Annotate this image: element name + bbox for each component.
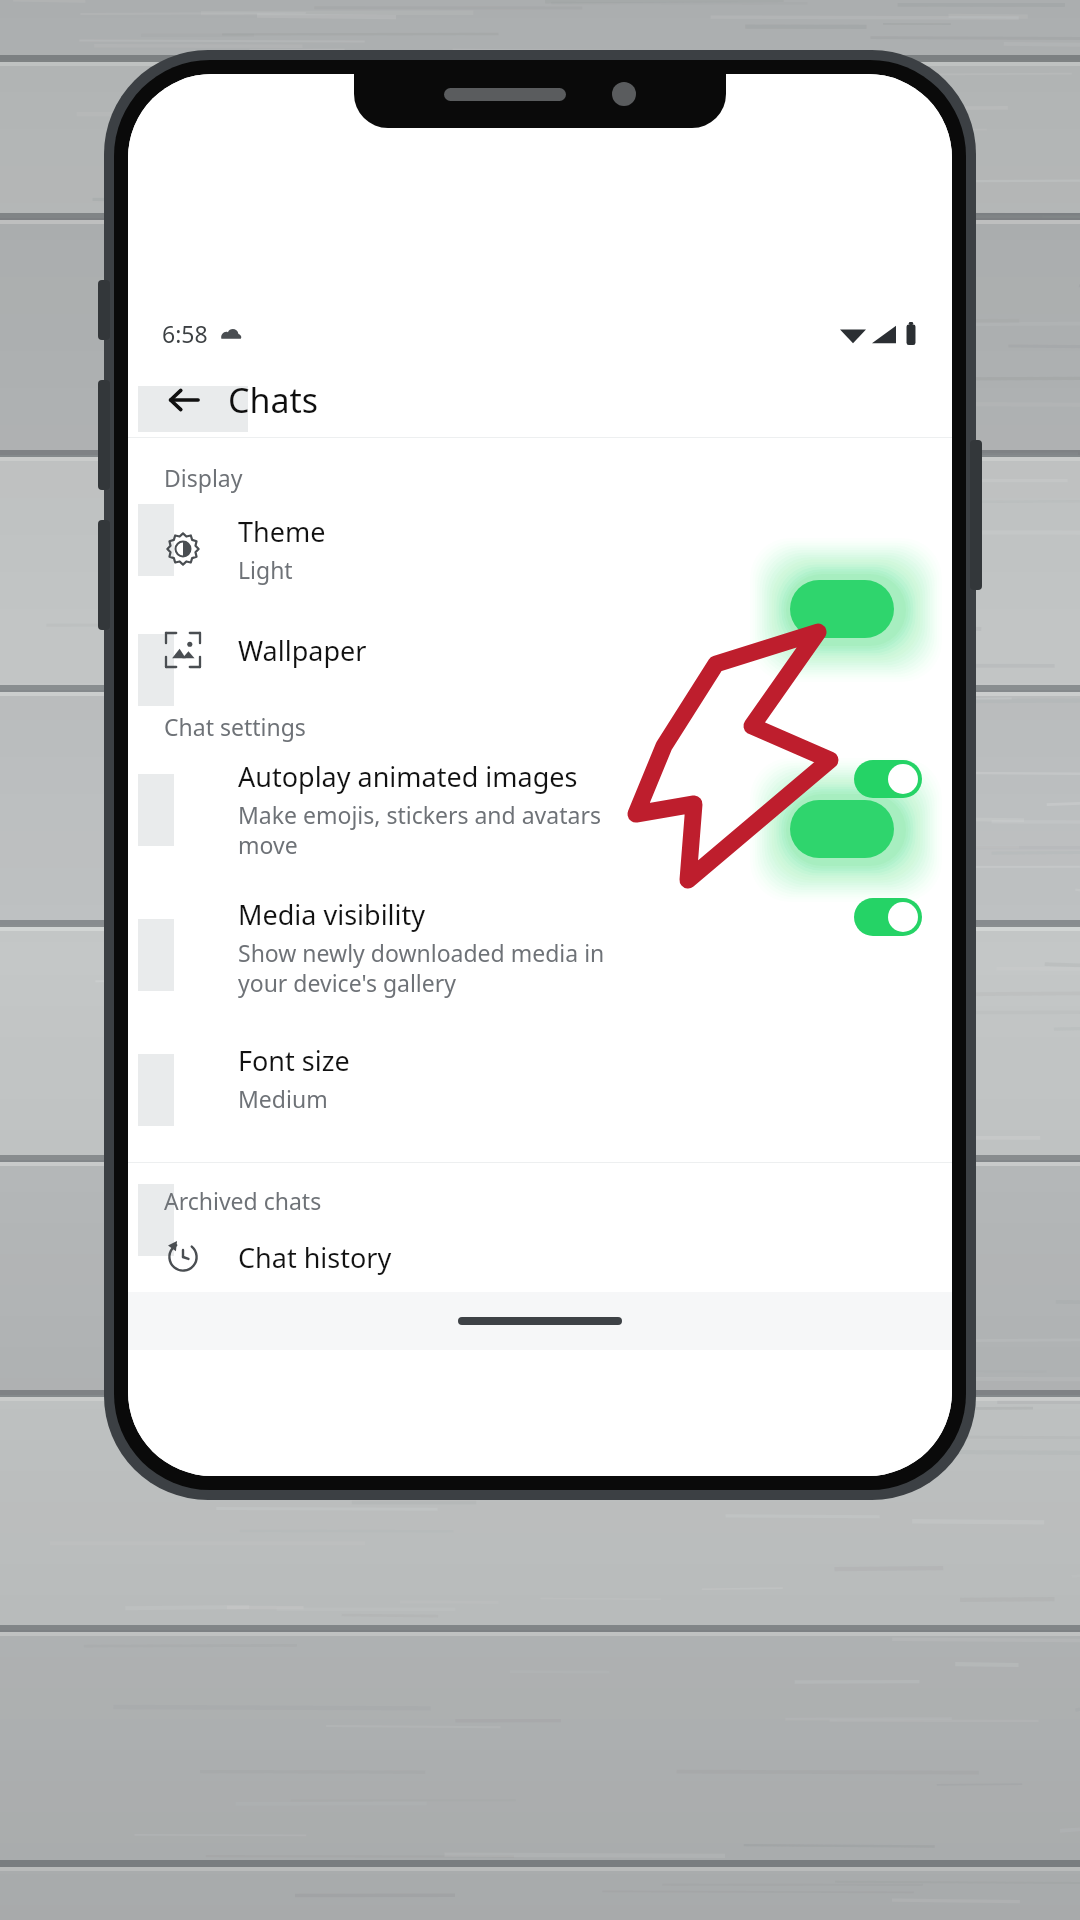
staticText: Light xyxy=(238,554,293,585)
button[interactable]: Toggle on xyxy=(854,898,922,936)
staticText: Autoplay animated images xyxy=(238,758,578,795)
staticText: Show newly downloaded media in your devi… xyxy=(238,937,605,998)
staticText: Chats xyxy=(228,377,319,423)
button[interactable]: Back xyxy=(154,370,214,430)
staticText: Theme xyxy=(238,513,326,550)
staticText: Display xyxy=(164,462,243,493)
staticText: Font size xyxy=(238,1042,350,1079)
staticText: Medium xyxy=(238,1083,328,1114)
button[interactable]: Toggle on xyxy=(854,760,922,798)
staticText: Make emojis, stickers and avatars move xyxy=(238,799,601,860)
staticText: Wallpaper xyxy=(238,632,367,669)
staticText: Media visibility xyxy=(238,896,426,933)
button[interactable]: Theme xyxy=(128,499,952,599)
button[interactable]: Media visibility xyxy=(128,886,952,1008)
button[interactable]: Chat history xyxy=(128,1222,952,1292)
button[interactable]: Wallpaper xyxy=(128,615,952,685)
staticText: Archived chats xyxy=(164,1185,322,1216)
button[interactable]: Autoplay animated images xyxy=(128,748,952,870)
button[interactable]: Font size xyxy=(128,1028,952,1128)
staticText: 6:58 xyxy=(162,318,208,349)
staticText: Chat history xyxy=(238,1239,392,1276)
staticText: Chat settings xyxy=(164,711,306,742)
